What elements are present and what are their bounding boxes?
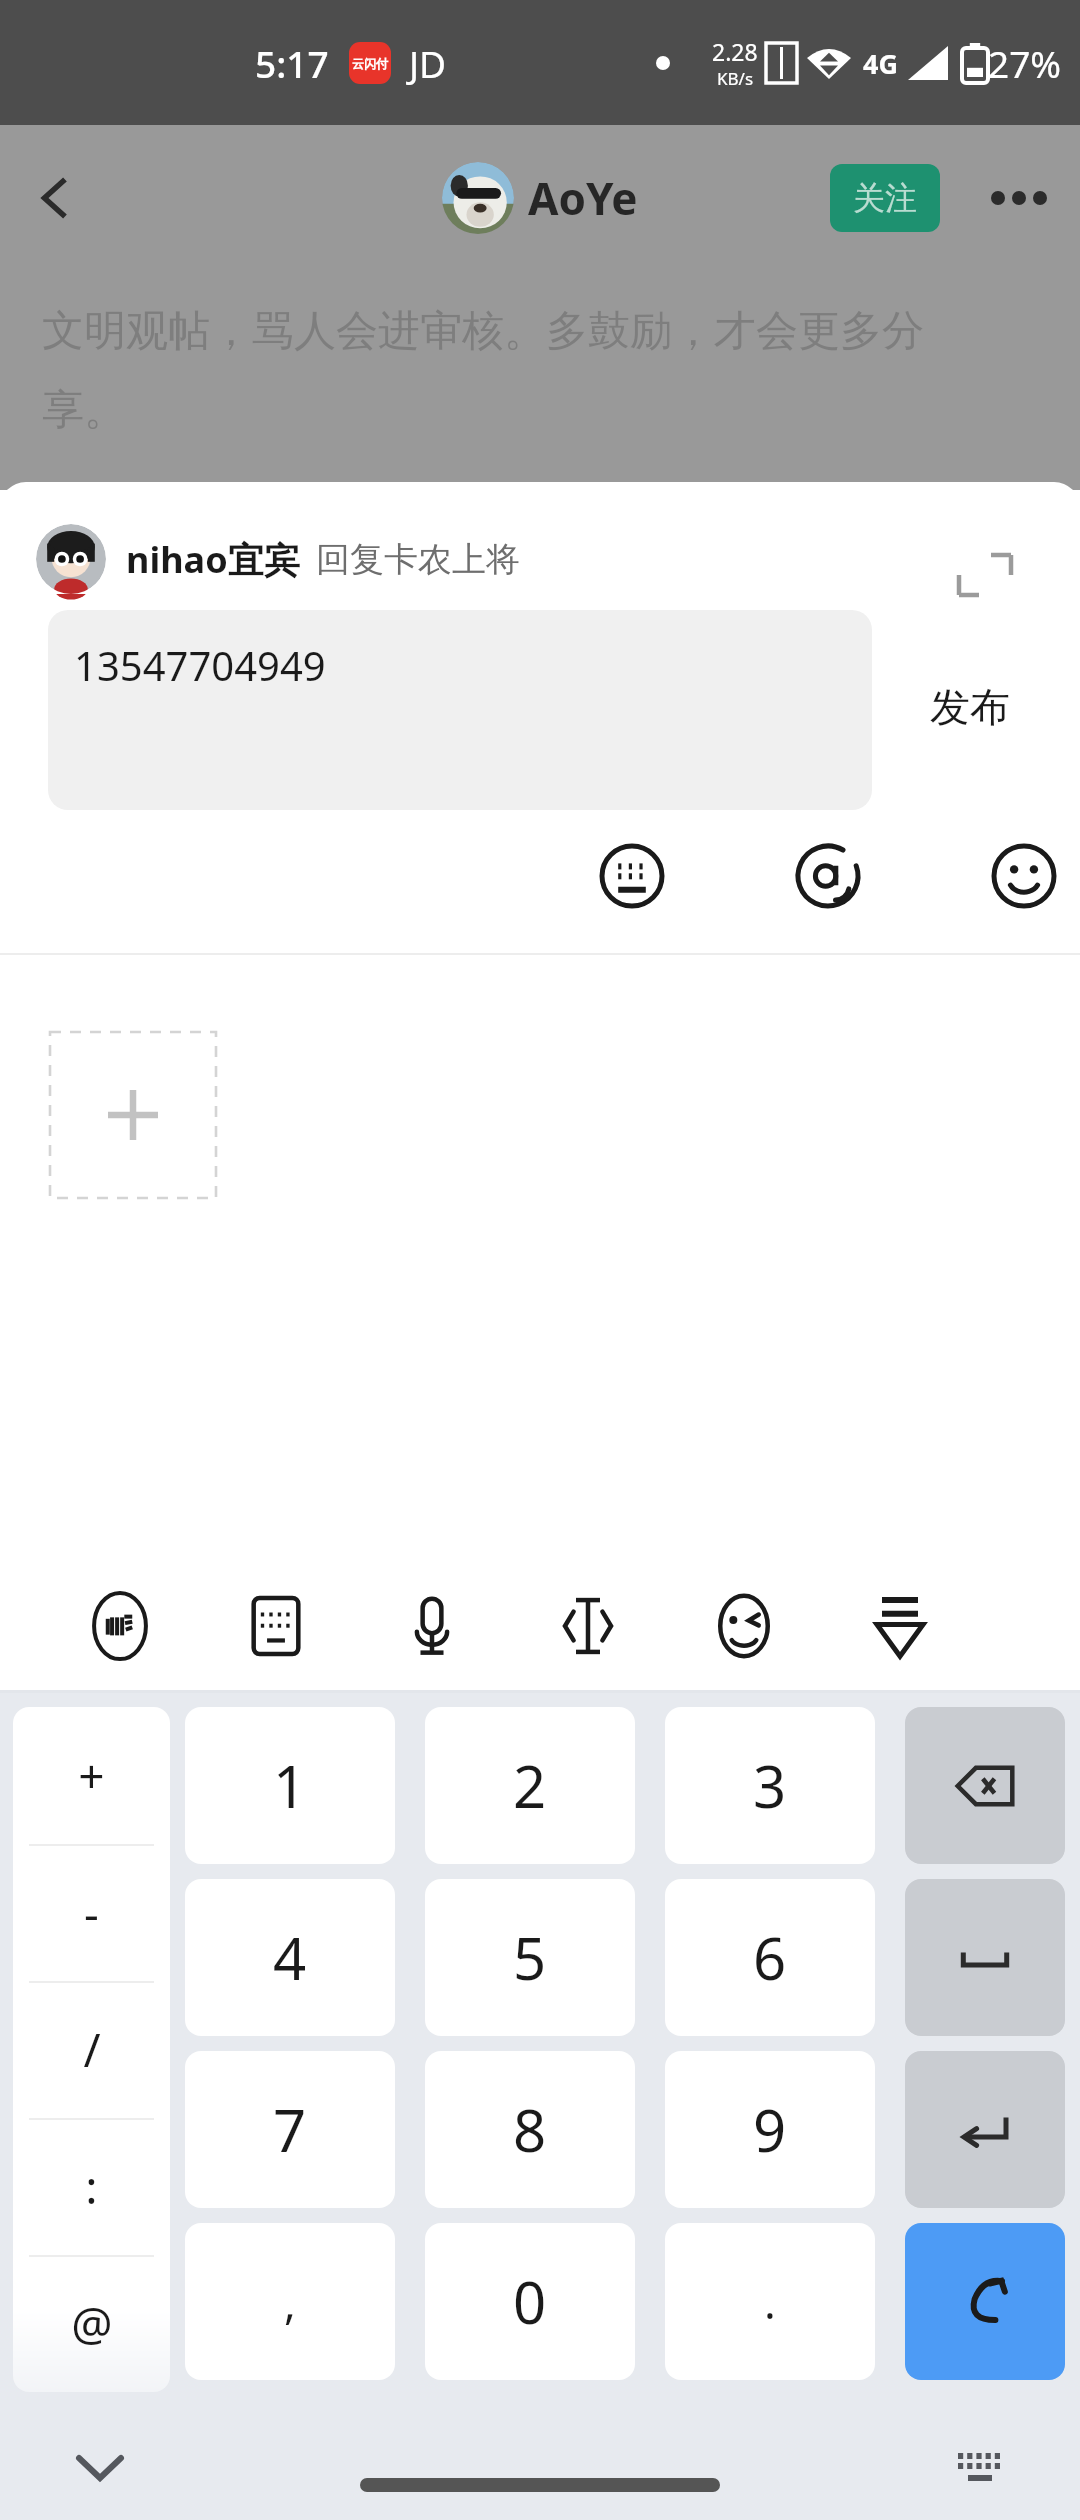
staticText: KB/s — [717, 67, 754, 90]
button[interactable]: 2 — [425, 1707, 635, 1864]
button[interactable]: Keyboard layout — [216, 1562, 336, 1690]
staticText: 5:17 — [255, 38, 329, 88]
button[interactable]: 6 — [665, 1879, 875, 2036]
button[interactable]: 4 — [185, 1879, 395, 2036]
staticText: 27% — [988, 38, 1062, 88]
button[interactable]: 关注 — [830, 164, 940, 232]
staticText: 9 — [753, 2090, 787, 2169]
button[interactable]: Keyboard — [590, 834, 674, 918]
button[interactable]: Back — [10, 153, 100, 243]
button[interactable]: Switch keyboard — [940, 2428, 1020, 2508]
button[interactable]: Expand — [940, 530, 1030, 620]
button[interactable]: Backspace — [905, 1707, 1065, 1864]
button[interactable]: Return — [905, 2223, 1065, 2380]
staticText: - — [84, 1881, 99, 1944]
staticText: AoYe — [528, 168, 638, 228]
button[interactable]: 9 — [665, 2051, 875, 2208]
staticText: 1 — [273, 1746, 307, 1825]
staticText: 8 — [513, 2090, 547, 2169]
button[interactable]: 发布 — [900, 667, 1040, 747]
button[interactable]: , — [185, 2223, 395, 2380]
button[interactable]: Space — [905, 1879, 1065, 2036]
button[interactable]: 0 — [425, 2223, 635, 2380]
button[interactable]: @ — [13, 2255, 170, 2392]
button[interactable]: : — [13, 2118, 170, 2255]
button[interactable]: Input method — [60, 1562, 180, 1690]
staticText: 6 — [753, 1918, 787, 1997]
staticText: 享。 — [42, 384, 126, 437]
staticText: nihao宜宾 — [126, 535, 300, 584]
button[interactable]: Voice input — [372, 1562, 492, 1690]
button[interactable]: Move cursor — [528, 1562, 648, 1690]
staticText: 回复卡农上将 — [316, 538, 520, 581]
button[interactable]: Emoji — [684, 1562, 804, 1690]
staticText: / — [83, 2018, 101, 2081]
staticText: 4 — [273, 1918, 307, 1997]
staticText: 2.28 — [712, 36, 758, 67]
button[interactable]: 1 — [185, 1707, 395, 1864]
staticText: 2 — [513, 1746, 547, 1825]
staticText: 4G — [863, 45, 898, 82]
button[interactable]: New line — [905, 2051, 1065, 2208]
staticText: 13547704949 — [74, 638, 326, 692]
button[interactable]: Emoji — [982, 834, 1066, 918]
button[interactable]: 3 — [665, 1707, 875, 1864]
staticText: : — [85, 2155, 98, 2218]
button[interactable]: Add image — [50, 1032, 216, 1198]
staticText: 发布 — [930, 682, 1010, 732]
button[interactable]: 7 — [185, 2051, 395, 2208]
button[interactable]: 13547704949 — [48, 610, 872, 810]
staticText: + — [78, 1744, 105, 1807]
button[interactable]: Collapse — [840, 1562, 960, 1690]
button[interactable]: More options — [976, 155, 1062, 241]
button[interactable]: - — [13, 1844, 170, 1981]
button[interactable]: . — [665, 2223, 875, 2380]
button[interactable]: Mention — [786, 834, 870, 918]
staticText: 关注 — [853, 178, 917, 218]
staticText: 文明观帖，骂人会进审核。多鼓励，才会更多分 — [42, 305, 924, 358]
button[interactable]: + — [13, 1707, 170, 1844]
button[interactable]: / — [13, 1981, 170, 2118]
staticText: 5 — [513, 1918, 547, 1997]
staticText: , — [284, 2272, 296, 2332]
staticText: 3 — [753, 1746, 787, 1825]
button[interactable]: 5 — [425, 1879, 635, 2036]
staticText: @ — [71, 2292, 113, 2355]
staticText: JD — [409, 38, 447, 88]
button[interactable]: nihao宜宾 — [36, 524, 520, 594]
button[interactable]: 8 — [425, 2051, 635, 2208]
staticText: 云闪付 — [352, 56, 388, 71]
staticText: . — [764, 2272, 776, 2332]
button[interactable]: Hide keyboard — [60, 2428, 140, 2508]
staticText: 7 — [273, 2090, 307, 2169]
button[interactable]: AoYe — [442, 162, 638, 234]
staticText: 0 — [513, 2262, 547, 2341]
